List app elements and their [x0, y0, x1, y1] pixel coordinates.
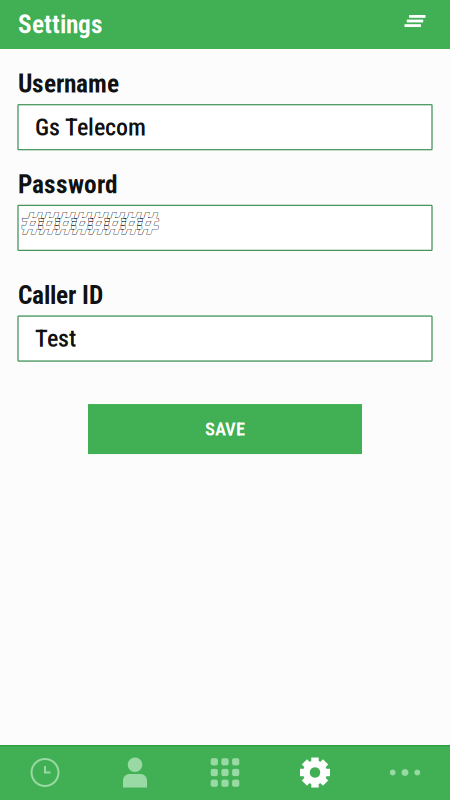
staticText: SAVE — [205, 418, 245, 440]
staticText: Gs Telecom — [35, 113, 146, 141]
button[interactable]: Keypad — [180, 745, 270, 800]
staticText: Password — [18, 170, 118, 199]
button[interactable]: SAVE — [88, 404, 362, 454]
staticText: Settings — [18, 10, 103, 39]
button[interactable]: Sort — [392, 1, 438, 47]
button[interactable]: Contacts — [90, 745, 180, 800]
button[interactable]: Settings — [270, 745, 360, 800]
staticText: Username — [18, 69, 119, 99]
staticText: ######## — [21, 202, 159, 243]
staticText: Caller ID — [18, 280, 103, 310]
button[interactable]: Recents — [0, 745, 90, 800]
button[interactable]: More — [360, 745, 450, 800]
staticText: Test — [35, 324, 76, 353]
